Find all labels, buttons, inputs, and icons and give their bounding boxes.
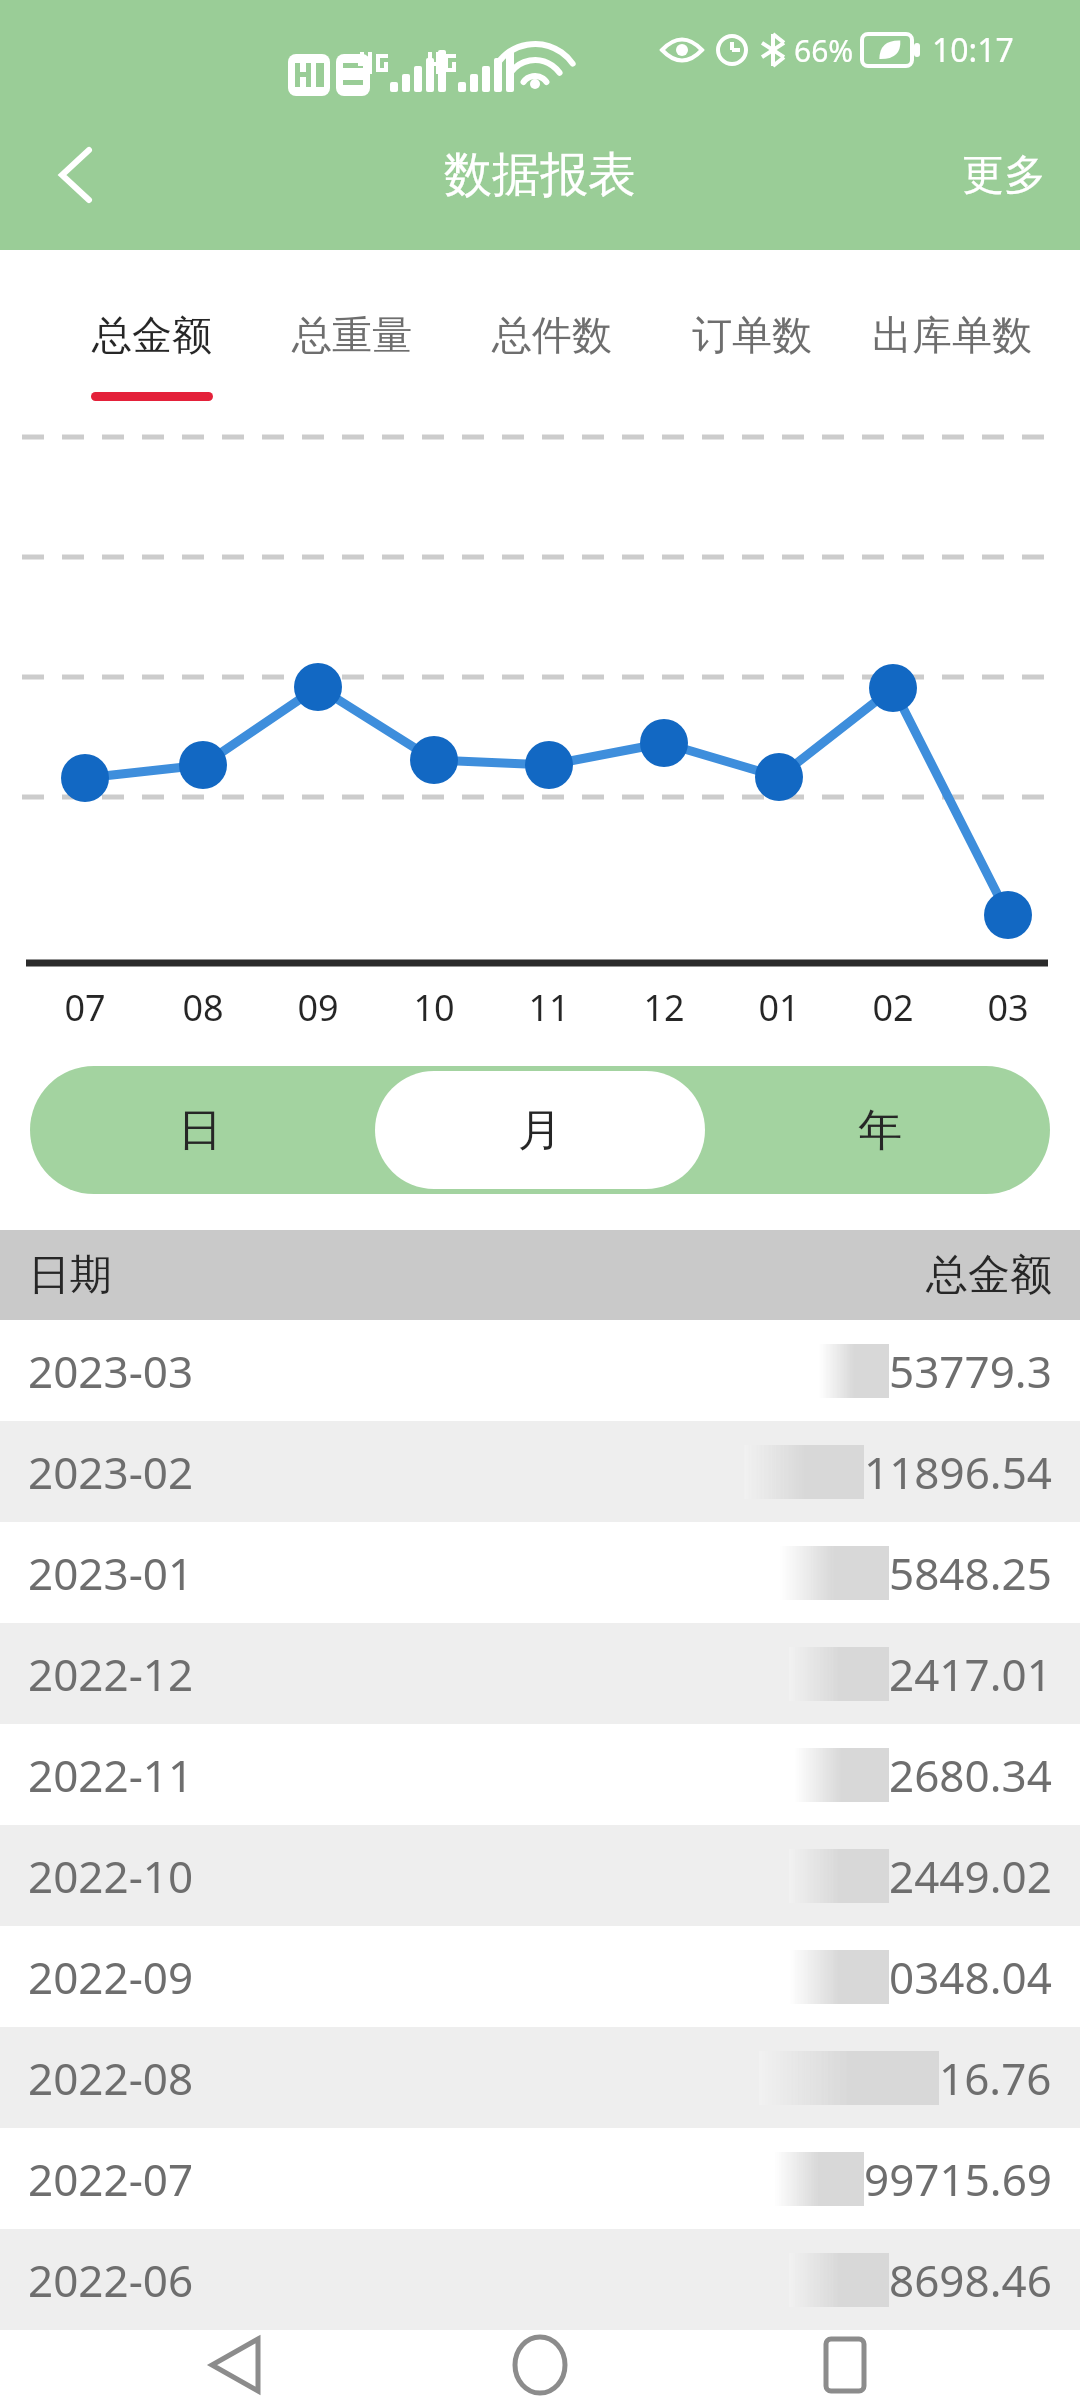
staticText: 更多 xyxy=(962,149,1046,202)
button[interactable]: 更多 xyxy=(928,127,1080,224)
button[interactable]: 日 xyxy=(35,1071,365,1189)
button[interactable]: 总件数 xyxy=(452,250,652,420)
button[interactable]: 2022-07 xyxy=(0,2128,1080,2229)
staticText: 2022-10 xyxy=(28,1846,194,1906)
staticText: 02 xyxy=(872,983,914,1032)
button[interactable]: 月 xyxy=(375,1071,705,1189)
button[interactable]: Recent apps xyxy=(775,2330,915,2400)
staticText: 2680.34 xyxy=(889,1745,1052,1805)
staticText: 2022-07 xyxy=(28,2149,194,2209)
staticText: 总件数 xyxy=(492,310,612,360)
staticText: 2022-08 xyxy=(28,2048,194,2108)
staticText: 数据报表 xyxy=(444,145,636,205)
button[interactable]: 年 xyxy=(715,1071,1045,1189)
staticText: 10:17 xyxy=(932,28,1014,72)
button[interactable]: 总金额 xyxy=(52,250,252,420)
staticText: 总金额 xyxy=(92,310,212,360)
staticText: 日 xyxy=(178,1103,222,1158)
staticText: 日期 xyxy=(28,1249,112,1302)
staticText: 03 xyxy=(987,983,1029,1032)
staticText: 2023-02 xyxy=(28,1442,194,1502)
staticText: 53779.3 xyxy=(889,1341,1052,1401)
button[interactable]: 出库单数 xyxy=(852,250,1052,420)
staticText: 0348.04 xyxy=(889,1947,1052,2007)
staticText: 2023-01 xyxy=(28,1543,194,1603)
button[interactable]: 2023-03 xyxy=(0,1320,1080,1421)
staticText: 16.76 xyxy=(939,2048,1052,2108)
button[interactable]: 2023-02 xyxy=(0,1421,1080,1522)
staticText: 2449.02 xyxy=(889,1846,1052,1906)
staticText: 09 xyxy=(297,983,339,1032)
staticText: 07 xyxy=(64,983,106,1032)
staticText: 01 xyxy=(758,983,800,1032)
staticText: 10 xyxy=(413,983,455,1032)
staticText: 订单数 xyxy=(692,310,812,360)
button[interactable]: Back xyxy=(165,2330,305,2400)
staticText: 出库单数 xyxy=(872,310,1032,360)
staticText: 2023-03 xyxy=(28,1341,194,1401)
staticText: 总重量 xyxy=(292,310,412,360)
button[interactable]: Back xyxy=(30,130,120,220)
button[interactable]: 2022-12 xyxy=(0,1623,1080,1724)
staticText: 2022-06 xyxy=(28,2250,194,2310)
staticText: 月 xyxy=(518,1103,562,1158)
staticText: 11896.54 xyxy=(864,1442,1052,1502)
staticText: 08 xyxy=(182,983,224,1032)
staticText: 5848.25 xyxy=(889,1543,1052,1603)
staticText: 总金额 xyxy=(926,1249,1052,1302)
staticText: 年 xyxy=(858,1103,902,1158)
staticText: 2022-11 xyxy=(28,1745,194,1805)
staticText: 12 xyxy=(643,983,685,1032)
staticText: 2022-09 xyxy=(28,1947,194,2007)
button[interactable]: 总重量 xyxy=(252,250,452,420)
button[interactable]: 订单数 xyxy=(652,250,852,420)
button[interactable]: 2022-08 xyxy=(0,2027,1080,2128)
button[interactable]: 2022-09 xyxy=(0,1926,1080,2027)
staticText: 66% xyxy=(794,30,854,71)
staticText: 2417.01 xyxy=(889,1644,1052,1704)
button[interactable]: 2022-10 xyxy=(0,1825,1080,1926)
button[interactable]: 2022-11 xyxy=(0,1724,1080,1825)
staticText: 99715.69 xyxy=(864,2149,1052,2209)
button[interactable]: 2022-06 xyxy=(0,2229,1080,2330)
staticText: 2022-12 xyxy=(28,1644,194,1704)
button[interactable]: 2023-01 xyxy=(0,1522,1080,1623)
button[interactable]: Home xyxy=(470,2330,610,2400)
staticText: 11 xyxy=(528,983,570,1032)
staticText: 8698.46 xyxy=(889,2250,1052,2310)
